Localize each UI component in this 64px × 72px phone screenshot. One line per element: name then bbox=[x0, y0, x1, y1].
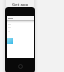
button[interactable] bbox=[7, 38, 13, 44]
button[interactable]: Home bbox=[18, 64, 23, 69]
button[interactable]: Get app bbox=[10, 2, 30, 6]
staticText: Get app bbox=[12, 2, 29, 6]
button[interactable] bbox=[7, 16, 34, 20]
